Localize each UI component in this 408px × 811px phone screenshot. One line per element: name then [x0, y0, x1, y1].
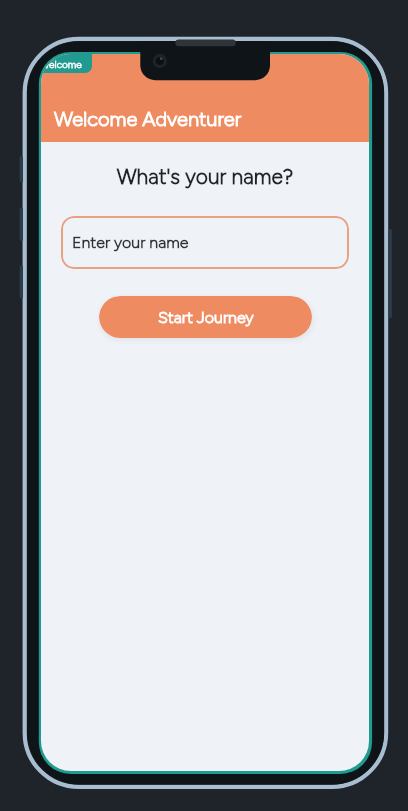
button[interactable]: Start Journey: [99, 296, 312, 338]
staticText: Welcome Adventurer: [54, 107, 242, 131]
staticText: Start Journey: [158, 308, 254, 327]
staticText: Welcome: [41, 58, 82, 70]
staticText: What's your name?: [41, 164, 369, 189]
button[interactable]: Welcome: [41, 54, 92, 73]
button[interactable]: Enter your name: [61, 216, 349, 269]
staticText: Enter your name: [72, 233, 189, 252]
